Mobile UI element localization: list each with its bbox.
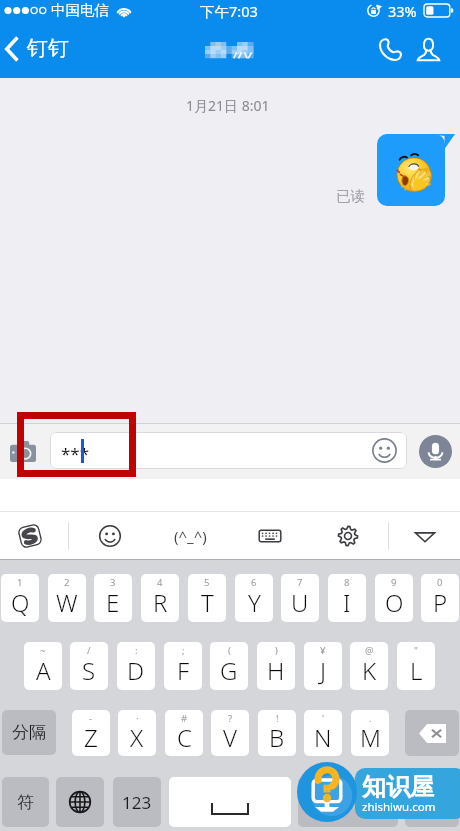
button[interactable]: / bbox=[70, 642, 108, 690]
staticText: 9 bbox=[391, 576, 397, 589]
staticText: 分隔 bbox=[12, 722, 46, 743]
staticText: ~ bbox=[40, 644, 46, 657]
staticText: / bbox=[87, 644, 91, 657]
button[interactable]: 0 bbox=[421, 574, 459, 622]
button[interactable]: Input method bbox=[6, 512, 54, 560]
button[interactable]: ; bbox=[164, 642, 202, 690]
button[interactable]: 2 bbox=[48, 574, 86, 622]
button[interactable]: Call bbox=[371, 30, 409, 68]
staticText: 下午7:03 bbox=[200, 1, 258, 21]
staticText: 3 bbox=[110, 576, 116, 589]
staticText: 钉钉 bbox=[27, 35, 69, 61]
staticText: - bbox=[89, 712, 93, 725]
staticText: Z bbox=[84, 721, 98, 754]
button[interactable]: ? bbox=[211, 710, 249, 756]
staticText: Q bbox=[11, 586, 30, 619]
button[interactable]: . bbox=[351, 710, 389, 756]
button[interactable]: 3 bbox=[94, 574, 132, 622]
staticText: 符 bbox=[17, 792, 34, 813]
button[interactable]: 9 bbox=[375, 574, 413, 622]
staticText: 下载 bbox=[401, 769, 460, 807]
button[interactable]: Camera bbox=[5, 433, 41, 469]
staticText: I bbox=[343, 586, 351, 619]
staticText: L bbox=[410, 654, 423, 687]
staticText: H bbox=[267, 654, 285, 687]
staticText: P bbox=[433, 586, 448, 619]
staticText: A bbox=[36, 654, 51, 687]
button[interactable]: @ bbox=[350, 642, 388, 690]
staticText: X bbox=[130, 721, 144, 754]
button[interactable]: 钉钉 bbox=[0, 31, 79, 67]
staticText: 2 bbox=[64, 576, 70, 589]
button[interactable]: *** bbox=[50, 432, 407, 469]
staticText: 7 bbox=[297, 576, 303, 589]
button[interactable]: ¥ bbox=[304, 642, 342, 690]
button[interactable]: # bbox=[165, 710, 203, 756]
staticText: ( bbox=[228, 644, 231, 657]
staticText: ¥ bbox=[320, 644, 326, 657]
button[interactable]: Return bbox=[405, 777, 459, 827]
button[interactable]: 1 bbox=[1, 574, 39, 622]
staticText: 1月21日 8:01 bbox=[186, 96, 270, 115]
button[interactable]: Backspace bbox=[405, 710, 459, 756]
button[interactable]: Hide keyboard bbox=[401, 512, 449, 560]
staticText: C bbox=[177, 721, 192, 754]
staticText: M bbox=[360, 721, 381, 754]
staticText: T bbox=[201, 586, 214, 619]
staticText: 0 bbox=[437, 576, 443, 589]
staticText: 中国电信 bbox=[51, 1, 109, 19]
button[interactable]: " bbox=[397, 642, 435, 690]
staticText: D bbox=[127, 654, 145, 687]
button[interactable]: 符 bbox=[2, 777, 49, 827]
button[interactable]: - bbox=[72, 710, 110, 756]
staticText: W bbox=[56, 586, 78, 619]
button[interactable]: Kaomoji bbox=[160, 512, 220, 560]
staticText: N bbox=[314, 721, 332, 754]
staticText: zhishiwu.com bbox=[362, 799, 436, 815]
button[interactable]: ! bbox=[258, 710, 296, 756]
button[interactable]: Send bbox=[298, 777, 398, 827]
button[interactable]: ~ bbox=[24, 642, 62, 690]
staticText: 4 bbox=[157, 576, 163, 589]
staticText: ? bbox=[228, 712, 233, 725]
staticText: S bbox=[82, 654, 96, 687]
staticText: *** bbox=[61, 442, 90, 465]
staticText: (^_^) bbox=[174, 526, 207, 546]
button[interactable]: 分隔 bbox=[2, 710, 56, 755]
button[interactable]: · bbox=[118, 710, 156, 756]
button[interactable]: 7 bbox=[281, 574, 319, 622]
button[interactable]: Switch language bbox=[56, 777, 104, 827]
staticText: ! bbox=[276, 712, 279, 725]
button[interactable]: Voice input bbox=[419, 435, 452, 468]
button[interactable]: 6 bbox=[235, 574, 273, 622]
button[interactable]: 123 bbox=[113, 777, 161, 827]
button[interactable]: : bbox=[117, 642, 155, 690]
button[interactable]: ) bbox=[257, 642, 295, 690]
staticText: : bbox=[135, 644, 138, 657]
button[interactable]: Contact info bbox=[409, 30, 447, 68]
staticText: " bbox=[414, 644, 418, 657]
button[interactable]: Keyboard layout bbox=[246, 512, 294, 560]
staticText: J bbox=[320, 654, 327, 687]
staticText: V bbox=[223, 721, 237, 754]
button[interactable]: 8 bbox=[328, 574, 366, 622]
staticText: Y bbox=[248, 586, 261, 619]
button[interactable]: ' bbox=[304, 710, 342, 756]
button[interactable]: Space bbox=[169, 777, 291, 827]
staticText: U bbox=[291, 586, 309, 619]
staticText: 已读 bbox=[336, 187, 365, 205]
staticText: 6 bbox=[251, 576, 257, 589]
button[interactable]: ( bbox=[210, 642, 248, 690]
button[interactable]: Emoji bbox=[86, 512, 134, 560]
staticText: 1 bbox=[17, 576, 23, 589]
staticText: . bbox=[369, 712, 372, 725]
staticText: @ bbox=[365, 644, 374, 657]
button[interactable]: 4 bbox=[141, 574, 179, 622]
button[interactable]: Settings bbox=[324, 512, 372, 560]
staticText: # bbox=[181, 712, 188, 725]
button[interactable]: 5 bbox=[188, 574, 226, 622]
staticText: K bbox=[362, 654, 377, 687]
staticText: R bbox=[153, 586, 168, 619]
staticText: ; bbox=[182, 644, 185, 657]
staticText: 123 bbox=[122, 791, 152, 814]
